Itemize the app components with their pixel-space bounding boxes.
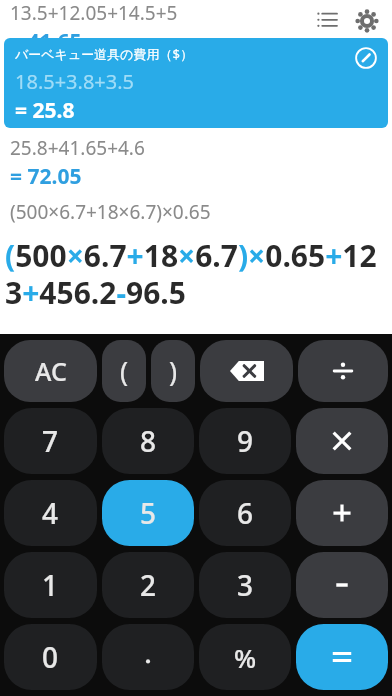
staticText: 5 xyxy=(140,494,157,532)
staticText: (500×6.7+18×6.7)×0.65 xyxy=(10,199,211,225)
button[interactable]: Decimal point xyxy=(102,624,194,690)
button[interactable]: 3 xyxy=(199,552,291,618)
staticText: 18.5+3.8+3.5 xyxy=(15,68,135,95)
staticText: ) xyxy=(169,353,178,390)
staticText: 13.5+12.05+14.5+5 xyxy=(10,0,178,26)
button[interactable]: バーベキュー道具の費用（$） xyxy=(4,38,388,128)
button[interactable]: Backspace xyxy=(200,340,293,402)
button[interactable]: Percent xyxy=(199,624,291,690)
button[interactable]: 0 xyxy=(4,624,97,690)
button[interactable]: 6 xyxy=(199,480,291,546)
button[interactable]: Settings xyxy=(350,6,384,36)
staticText: = 25.8 xyxy=(15,96,75,125)
staticText: 2 xyxy=(140,566,157,604)
staticText: 6 xyxy=(237,494,254,532)
button[interactable]: Close parenthesis xyxy=(151,340,195,402)
button[interactable]: 2 xyxy=(102,552,194,618)
staticText: バーベキュー道具の費用（$） xyxy=(15,45,193,63)
button[interactable]: Plus xyxy=(296,480,388,546)
button[interactable]: 1 xyxy=(4,552,97,618)
button[interactable]: Open parenthesis xyxy=(102,340,146,402)
staticText: 8 xyxy=(140,422,157,460)
button[interactable]: 5 xyxy=(102,480,194,546)
staticText: 4 xyxy=(42,494,59,532)
button[interactable]: AC xyxy=(4,340,97,402)
button[interactable]: Edit memo xyxy=(352,44,380,72)
staticText: ( xyxy=(120,353,129,390)
button[interactable]: Divide xyxy=(298,340,388,402)
staticText: % xyxy=(234,640,257,675)
staticText: = 72.05 xyxy=(10,162,82,191)
button[interactable]: Equals xyxy=(296,624,388,690)
staticText: 1 xyxy=(42,566,59,604)
staticText: 9 xyxy=(237,422,254,460)
button[interactable]: History list xyxy=(310,6,344,36)
button[interactable]: 8 xyxy=(102,408,194,474)
button[interactable]: 7 xyxy=(4,408,97,474)
button[interactable]: 4 xyxy=(4,480,97,546)
button[interactable]: Minus xyxy=(296,552,388,618)
button[interactable]: 9 xyxy=(199,408,291,474)
staticText: 7 xyxy=(42,422,59,460)
staticText: = 41.65 xyxy=(10,27,82,38)
staticText: 3 xyxy=(237,566,254,604)
staticText: 25.8+41.65+4.6 xyxy=(10,135,145,161)
staticText: 0 xyxy=(42,638,59,676)
staticText: AC xyxy=(35,354,67,388)
staticText: (500×6.7+18×6.7)×0.65+123+456.2-96.5 xyxy=(5,235,387,313)
button[interactable]: Multiply xyxy=(296,408,388,474)
